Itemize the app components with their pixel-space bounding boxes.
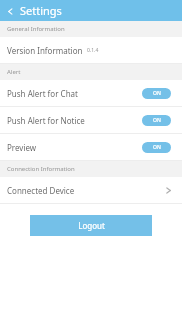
- staticText: Version Information: [7, 45, 83, 56]
- staticText: General Information: [7, 25, 65, 33]
- staticText: Connection Information: [7, 165, 75, 173]
- button[interactable]: Connected Device: [0, 177, 182, 203]
- staticText: Connected Device: [7, 185, 164, 196]
- staticText: 0.1.4: [87, 47, 99, 54]
- button[interactable]: Push Alert for Chat: [0, 80, 182, 106]
- button[interactable]: Push Alert for Notice: [0, 107, 182, 133]
- button[interactable]: Version Information: [0, 37, 182, 63]
- staticText: ON: [153, 144, 161, 151]
- staticText: Alert: [7, 68, 21, 76]
- button[interactable]: Logout: [30, 215, 152, 236]
- button[interactable]: ON: [142, 142, 171, 153]
- staticText: ON: [153, 117, 161, 124]
- staticText: ON: [153, 90, 161, 97]
- staticText: Logout: [78, 220, 105, 231]
- button[interactable]: Preview: [0, 134, 182, 160]
- staticText: Preview: [7, 142, 142, 153]
- staticText: Push Alert for Chat: [7, 88, 142, 99]
- button[interactable]: ON: [142, 115, 171, 126]
- staticText: Push Alert for Notice: [7, 115, 142, 126]
- button[interactable]: Back: [3, 4, 17, 18]
- button[interactable]: ON: [142, 88, 171, 99]
- staticText: Settings: [20, 3, 62, 18]
